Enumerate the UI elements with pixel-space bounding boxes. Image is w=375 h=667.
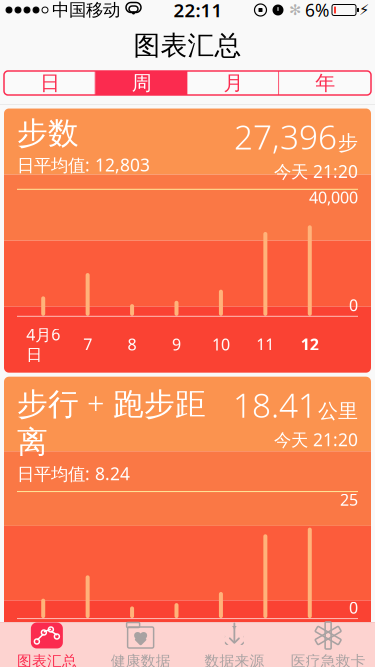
button[interactable]: 年	[279, 71, 371, 95]
button[interactable]: 图表汇总	[0, 617, 94, 667]
staticText: 日	[40, 71, 60, 95]
staticText: ⚡︎	[359, 2, 369, 18]
staticText: 步行 + 跑步距离	[17, 383, 206, 461]
staticText: 40,000	[309, 187, 358, 208]
staticText: 8	[128, 636, 137, 657]
staticText: ✻	[289, 2, 301, 18]
staticText: 0	[349, 597, 358, 618]
staticText: 步	[338, 131, 358, 155]
staticText: 10	[212, 636, 230, 657]
staticText: 数据来源	[204, 652, 264, 667]
staticText: 中国移动	[52, 0, 120, 21]
staticText: 周	[132, 71, 152, 95]
staticText: 年	[315, 71, 335, 95]
staticText: 11	[256, 636, 274, 657]
staticText: 月	[223, 71, 243, 95]
staticText: 医疗急救卡	[291, 652, 366, 667]
staticText: 4月6日	[26, 324, 60, 365]
staticText: 12	[301, 636, 319, 657]
staticText: 22:11	[173, 0, 222, 22]
staticText: 图表汇总	[17, 652, 77, 667]
staticText: 健康数据	[111, 652, 171, 667]
staticText: 10	[212, 334, 230, 355]
button[interactable]: 步行 + 跑步距离	[4, 377, 371, 667]
staticText: 日平均值: 12,803	[17, 153, 150, 176]
staticText: 日平均值: 8.24	[17, 462, 130, 485]
staticText: 6%	[305, 0, 329, 21]
staticText: 25	[340, 489, 358, 510]
button[interactable]: 医疗急救卡	[281, 617, 375, 667]
staticText: 7	[83, 334, 92, 355]
staticText: 步数	[17, 114, 79, 152]
staticText: 图表汇总	[133, 29, 241, 62]
staticText: 18.41	[233, 383, 317, 427]
staticText: 9	[172, 334, 181, 355]
staticText: 11	[256, 334, 274, 355]
staticText: 4月6日	[26, 626, 60, 667]
button[interactable]: 健康数据	[94, 617, 188, 667]
staticText: 公里	[318, 399, 358, 423]
staticText: 8	[128, 334, 137, 355]
button[interactable]: 周	[96, 71, 188, 95]
staticText: 12	[301, 334, 319, 355]
button[interactable]: 数据来源	[187, 617, 281, 667]
button[interactable]: 步数	[4, 108, 371, 373]
staticText: 0	[349, 294, 358, 316]
button[interactable]: 日	[4, 71, 96, 95]
staticText: 27,396	[234, 114, 337, 159]
staticText: 今天 21:20	[274, 160, 358, 183]
button[interactable]: 月	[187, 71, 279, 95]
staticText: 今天 21:20	[274, 428, 358, 451]
